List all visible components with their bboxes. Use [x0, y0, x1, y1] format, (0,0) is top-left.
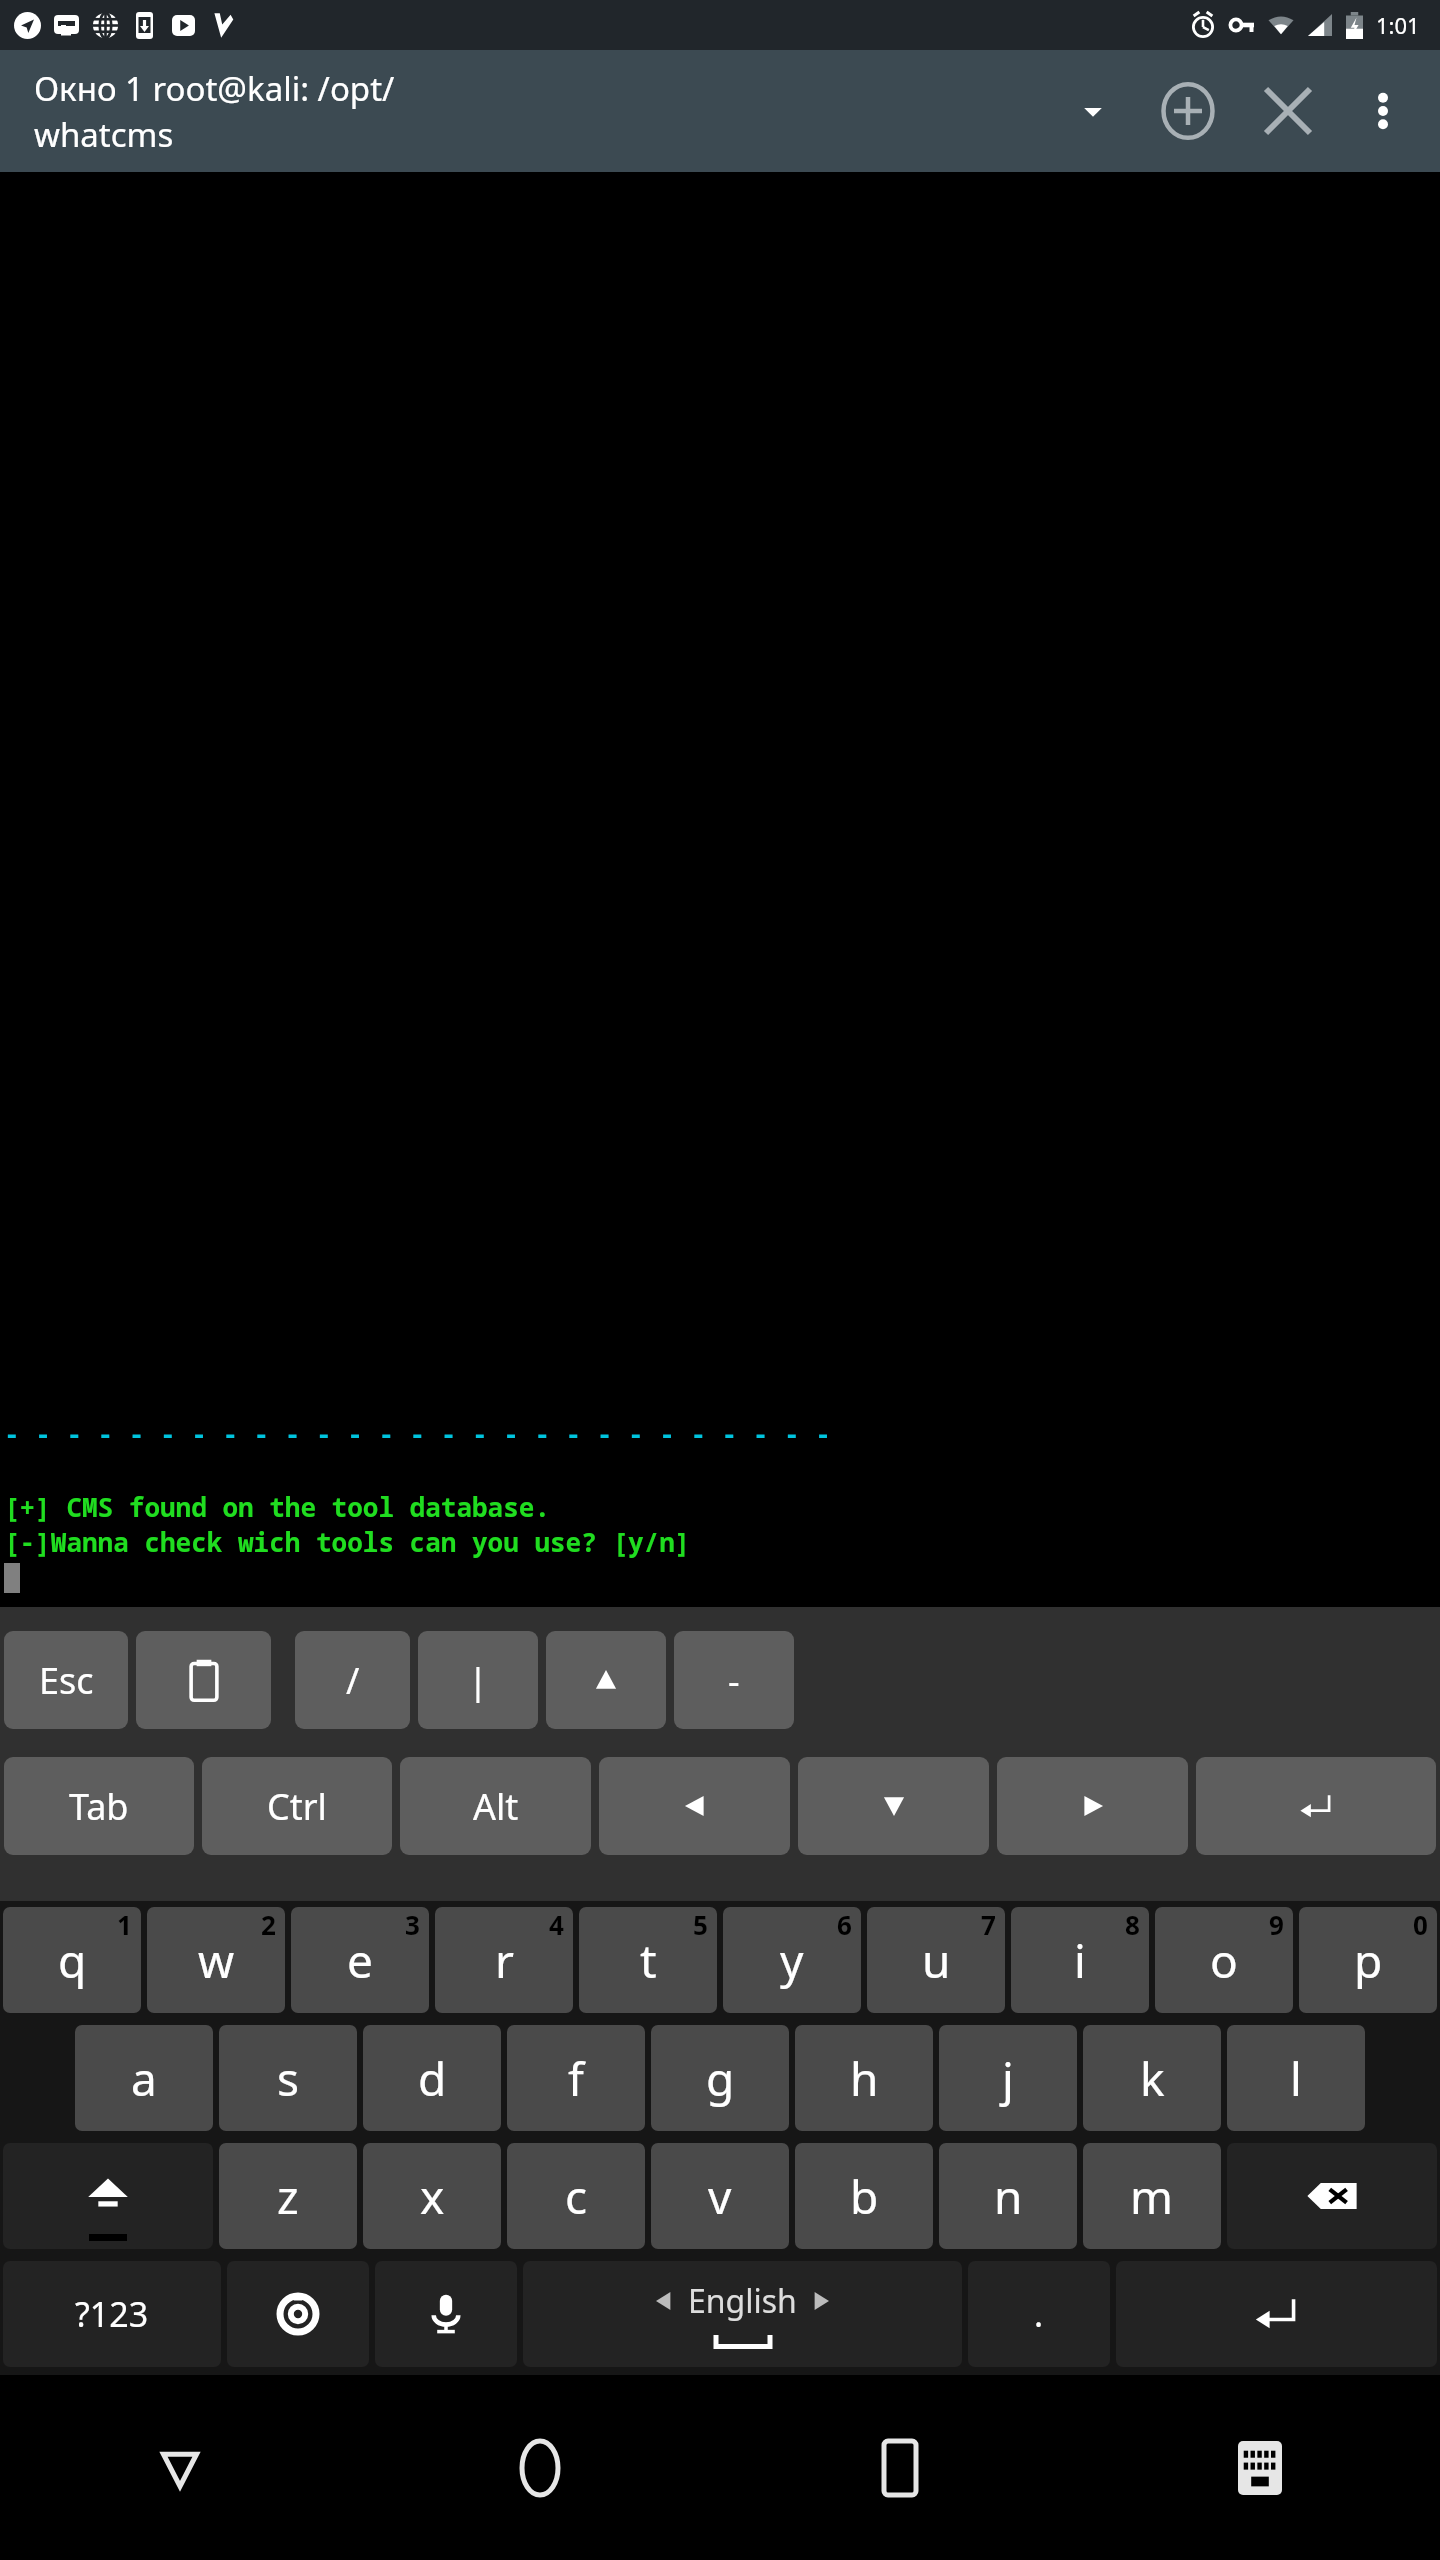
button[interactable]: .	[968, 2261, 1110, 2367]
staticText: 1	[117, 1907, 132, 1942]
staticText: c	[565, 2165, 588, 2228]
button[interactable]: j	[939, 2025, 1077, 2131]
button[interactable]: Back	[0, 2375, 360, 2560]
button[interactable]: a	[75, 2025, 213, 2131]
button[interactable]: g	[651, 2025, 789, 2131]
staticText: n	[994, 2165, 1023, 2228]
button[interactable]: Left	[599, 1757, 790, 1855]
button[interactable]: 4	[435, 1907, 573, 2013]
staticText: k	[1140, 2047, 1165, 2110]
button[interactable]: l	[1227, 2025, 1365, 2131]
staticText: - - - - - - - - - - - - - - - - - - - - …	[4, 1416, 831, 1451]
staticText: r	[495, 1929, 514, 1992]
button[interactable]: f	[507, 2025, 645, 2131]
staticText: Окно 1 root@kali: /opt/ whatcms	[34, 66, 754, 157]
staticText: q	[58, 1929, 87, 1992]
button[interactable]: b	[795, 2143, 933, 2249]
staticText: 1:01	[1376, 10, 1420, 40]
staticText: z	[277, 2165, 299, 2228]
button[interactable]: Tab	[4, 1757, 194, 1855]
staticText: y	[780, 1929, 804, 1992]
button[interactable]: c	[507, 2143, 645, 2249]
button[interactable]: Esc	[4, 1631, 128, 1729]
button[interactable]: Enter	[1196, 1757, 1436, 1855]
button[interactable]: Home	[360, 2375, 720, 2560]
staticText: d	[418, 2047, 447, 2110]
staticText: |	[468, 1656, 488, 1705]
button[interactable]: Close window	[1238, 61, 1338, 161]
staticText: Esc	[39, 1656, 94, 1705]
button[interactable]: |	[418, 1631, 538, 1729]
staticText: 5	[693, 1907, 708, 1942]
staticText: l	[1290, 2047, 1302, 2110]
button[interactable]: New window	[1138, 61, 1238, 161]
button[interactable]: 7	[867, 1907, 1005, 2013]
staticText: s	[277, 2047, 300, 2110]
staticText: b	[850, 2165, 879, 2228]
staticText: u	[922, 1929, 951, 1992]
staticText: j	[1002, 2047, 1014, 2110]
button[interactable]: s	[219, 2025, 357, 2131]
staticText: Ctrl	[267, 1782, 327, 1831]
staticText: 6	[837, 1907, 852, 1942]
button[interactable]: Paste	[136, 1631, 271, 1729]
button[interactable]: 6	[723, 1907, 861, 2013]
button[interactable]: v	[651, 2143, 789, 2249]
staticText: e	[347, 1929, 373, 1992]
staticText: i	[1074, 1929, 1086, 1992]
button[interactable]: 2	[147, 1907, 285, 2013]
button[interactable]: z	[219, 2143, 357, 2249]
staticText: w	[198, 1929, 235, 1992]
button[interactable]: 0	[1299, 1907, 1437, 2013]
button[interactable]: Voice input	[375, 2261, 517, 2367]
button[interactable]: Recents	[720, 2375, 1080, 2560]
staticText: t	[640, 1929, 657, 1992]
staticText: ?123	[75, 2291, 149, 2337]
button[interactable]: Shift	[3, 2143, 213, 2249]
staticText: 9	[1269, 1907, 1284, 1942]
button[interactable]: 8	[1011, 1907, 1149, 2013]
button[interactable]: Ctrl	[202, 1757, 392, 1855]
staticText: 3	[405, 1907, 420, 1942]
button[interactable]: Switch keyboard	[1080, 2375, 1440, 2560]
button[interactable]: 1	[3, 1907, 141, 2013]
button[interactable]: Right	[997, 1757, 1188, 1855]
staticText: 4	[549, 1907, 564, 1942]
staticText: English	[688, 2279, 797, 2323]
button[interactable]: 9	[1155, 1907, 1293, 2013]
button[interactable]: x	[363, 2143, 501, 2249]
button[interactable]: Down	[798, 1757, 989, 1855]
staticText: Tab	[69, 1782, 129, 1831]
staticText: h	[850, 2047, 879, 2110]
button[interactable]: English	[523, 2261, 962, 2367]
button[interactable]: Select window	[1048, 66, 1138, 156]
button[interactable]: k	[1083, 2025, 1221, 2131]
staticText: m	[1130, 2165, 1174, 2228]
button[interactable]: 3	[291, 1907, 429, 2013]
staticText: o	[1210, 1929, 1238, 1992]
button[interactable]: More options	[1338, 66, 1428, 156]
staticText: [+] CMS found on the tool database.	[4, 1489, 551, 1524]
staticText: -	[728, 1656, 740, 1705]
button[interactable]: Page up	[546, 1631, 666, 1729]
button[interactable]: n	[939, 2143, 1077, 2249]
button[interactable]: ?123	[3, 2261, 221, 2367]
staticText: a	[131, 2047, 157, 2110]
staticText: p	[1354, 1929, 1383, 1992]
button[interactable]: Alt	[400, 1757, 591, 1855]
staticText: 7	[981, 1907, 996, 1942]
button[interactable]: d	[363, 2025, 501, 2131]
staticText: g	[706, 2047, 735, 2110]
staticText: 2	[261, 1907, 276, 1942]
button[interactable]: Enter	[1116, 2261, 1437, 2367]
button[interactable]: m	[1083, 2143, 1221, 2249]
button[interactable]: Settings	[227, 2261, 369, 2367]
button[interactable]: 5	[579, 1907, 717, 2013]
staticText: x	[420, 2165, 445, 2228]
button[interactable]: /	[295, 1631, 410, 1729]
staticText: v	[708, 2165, 732, 2228]
button[interactable]: h	[795, 2025, 933, 2131]
button[interactable]: -	[674, 1631, 794, 1729]
button[interactable]: Backspace	[1227, 2143, 1437, 2249]
staticText: Alt	[473, 1782, 519, 1831]
